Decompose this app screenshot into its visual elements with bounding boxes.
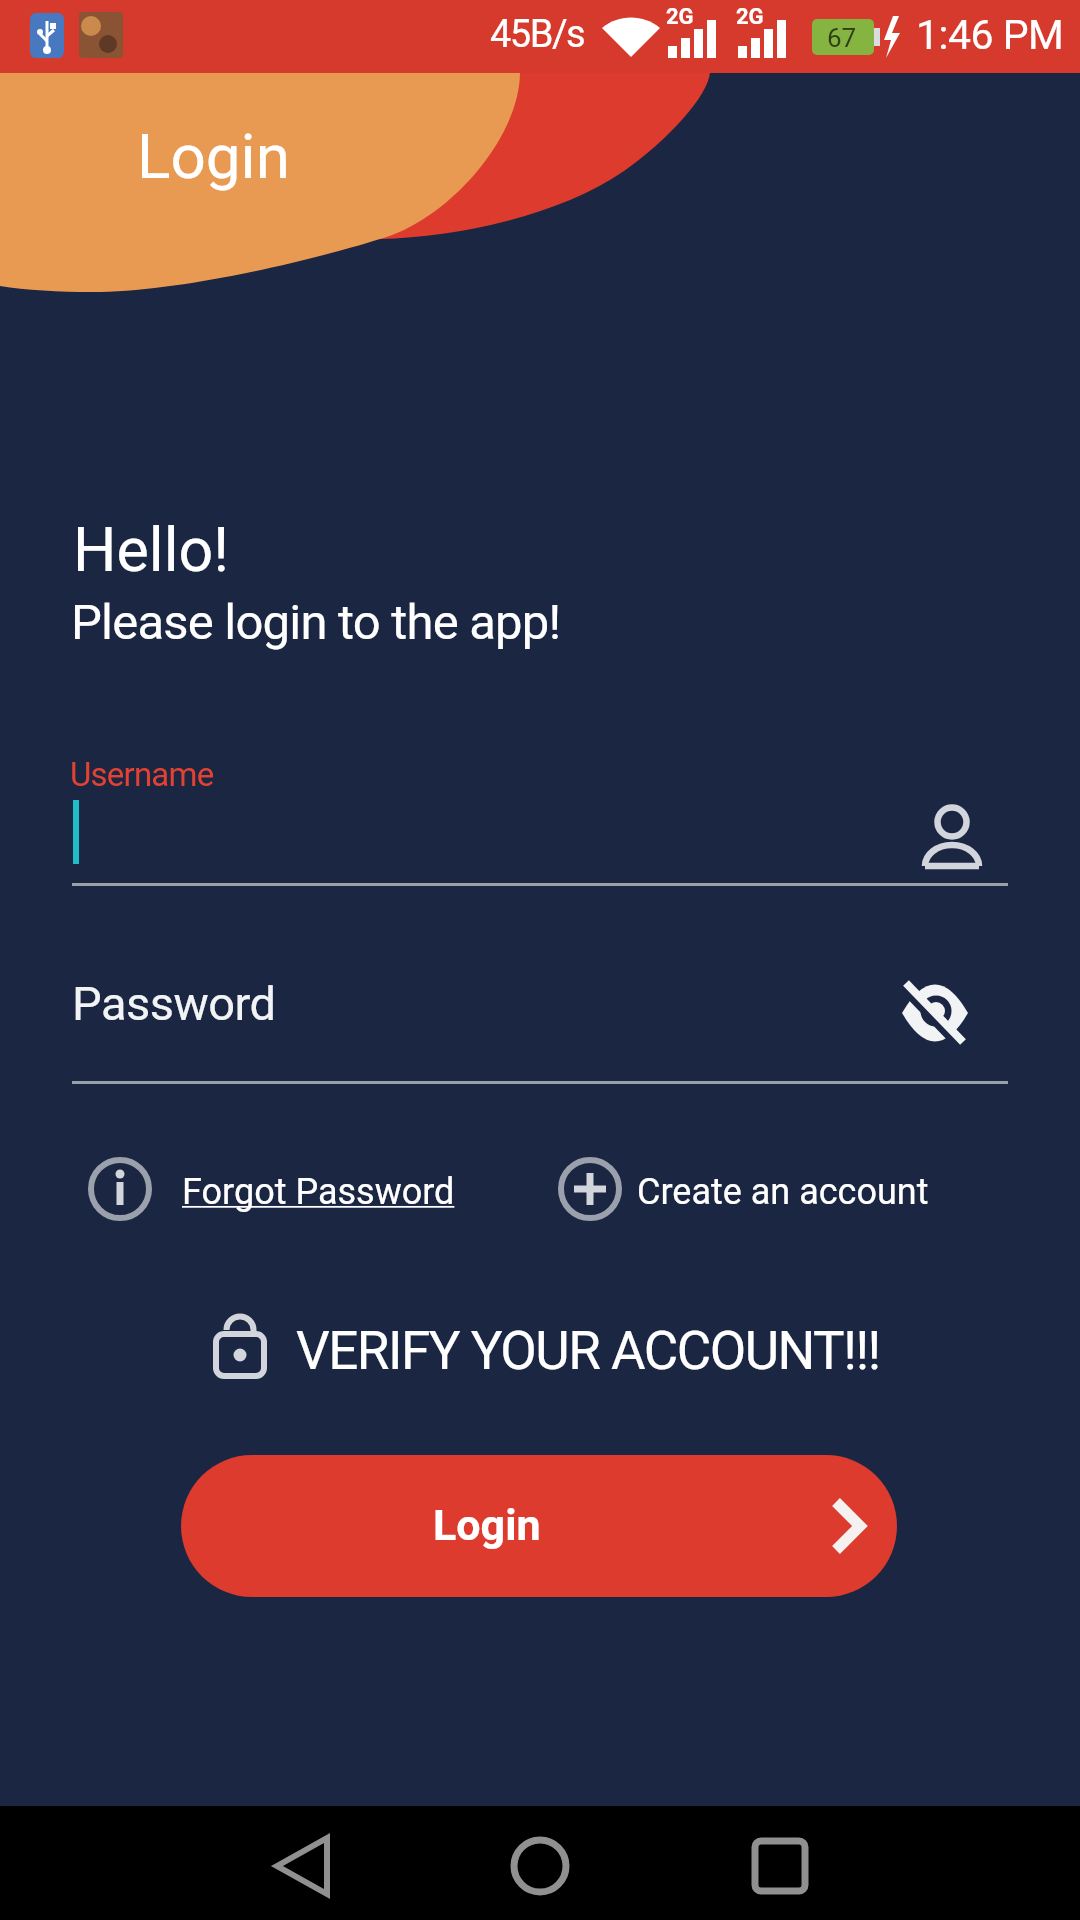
staticText: Username <box>70 755 214 794</box>
staticText: 45B/s <box>490 12 585 57</box>
staticText: Login <box>137 120 290 193</box>
staticText: Hello! <box>73 514 230 585</box>
button[interactable]: Forgot Password <box>80 1150 470 1230</box>
staticText: VERIFY YOUR ACCOUNT!!! <box>296 1320 880 1382</box>
button[interactable] <box>72 760 1008 886</box>
staticText: Password <box>72 976 276 1031</box>
staticText: Login <box>433 1500 541 1550</box>
staticText: Create an account <box>637 1171 929 1213</box>
staticText: 67 <box>827 23 857 53</box>
button[interactable] <box>886 975 986 1055</box>
staticText: 2G <box>736 4 764 30</box>
staticText: Forgot Password <box>182 1171 455 1213</box>
staticText: Please login to the app! <box>71 594 561 651</box>
staticText: 2G <box>666 4 694 30</box>
button[interactable]: Create an account <box>550 1150 940 1230</box>
button[interactable]: Login <box>181 1455 897 1597</box>
button[interactable] <box>72 958 882 1084</box>
staticText: 1:46 PM <box>916 11 1064 59</box>
